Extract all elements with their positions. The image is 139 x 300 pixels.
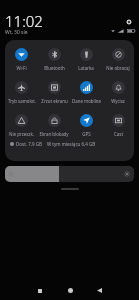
staticText: Latarka — [78, 65, 94, 71]
staticText: W tym miesiącu 6,4 GB — [47, 141, 96, 147]
staticText: Zrzut ekranu — [41, 98, 68, 104]
button[interactable]: Zrzut ekranu — [38, 73, 70, 106]
button[interactable]: Ekran blokady — [38, 106, 70, 139]
staticText: Cast — [114, 131, 123, 137]
button[interactable]: Dane mobilne — [70, 73, 102, 106]
button[interactable]: Nie obracaj — [102, 40, 134, 73]
staticText: Wt, 30 sie — [5, 29, 28, 36]
button[interactable]: Back — [86, 281, 112, 300]
button[interactable] — [5, 166, 134, 182]
staticText: Bluetooth — [44, 65, 65, 71]
staticText: GPS — [82, 131, 91, 137]
staticText: Wi-Fi — [16, 65, 27, 71]
button[interactable]: Home — [57, 281, 83, 300]
staticText: Dost. 7,9 GB — [16, 141, 42, 147]
button[interactable]: Latarka — [70, 40, 102, 73]
button[interactable]: Settings — [122, 15, 135, 28]
button[interactable]: Recent apps — [27, 281, 53, 300]
button[interactable]: Wi-Fi — [5, 40, 38, 73]
staticText: Wycisz — [111, 98, 125, 104]
staticText: Tryb samolot. — [8, 98, 36, 104]
staticText: Nie obracaj — [106, 65, 130, 71]
button[interactable]: Nie przeszk. — [5, 106, 38, 139]
staticText: 11:02 — [5, 11, 43, 31]
button[interactable]: Bluetooth — [38, 40, 70, 73]
staticText: Ekran blokady — [39, 131, 69, 137]
button[interactable]: Tryb samolot. — [5, 73, 38, 106]
button[interactable]: Cast — [102, 106, 134, 139]
button[interactable]: Wycisz — [102, 73, 134, 106]
staticText: Nie przeszk. — [9, 131, 34, 137]
button[interactable]: GPS — [70, 106, 102, 139]
staticText: Dane mobilne — [72, 98, 101, 104]
